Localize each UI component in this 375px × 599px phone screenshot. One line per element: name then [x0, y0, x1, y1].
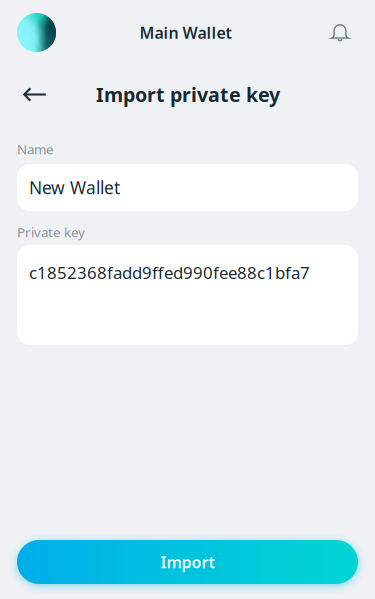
button[interactable]: New Wallet: [17, 164, 358, 211]
button[interactable]: Profile: [17, 13, 56, 52]
staticText: Name: [17, 140, 54, 158]
button[interactable]: Notifications: [326, 16, 354, 48]
staticText: Main Wallet: [139, 22, 231, 43]
staticText: New Wallet: [29, 176, 120, 199]
staticText: Import: [160, 551, 214, 573]
button[interactable]: c1852368fadd9ffed990fee88c1bfa7: [17, 245, 358, 345]
button[interactable]: Import: [17, 540, 358, 584]
staticText: Import private key: [96, 81, 280, 108]
staticText: Private key: [17, 223, 85, 241]
button[interactable]: Back: [18, 77, 52, 111]
staticText: c1852368fadd9ffed990fee88c1bfa7: [29, 261, 310, 284]
